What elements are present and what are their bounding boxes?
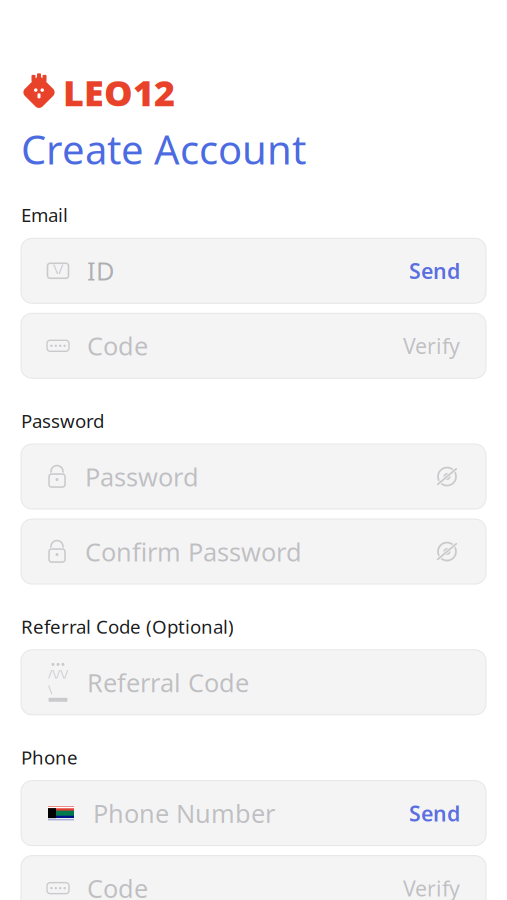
staticText: Referral Code (87, 665, 249, 699)
staticText: Code (87, 329, 148, 362)
button[interactable]: Confirm Password (21, 519, 486, 584)
button[interactable]: Phone Number (21, 781, 486, 846)
staticText: Verify (403, 874, 460, 900)
staticText: Password (85, 460, 199, 493)
staticText: Phone (21, 745, 78, 770)
staticText: Confirm Password (85, 535, 302, 568)
staticText: Send (409, 257, 460, 285)
staticText: Verify (403, 332, 460, 360)
staticText: Password (21, 408, 104, 433)
button[interactable]: Code (21, 313, 486, 378)
button[interactable]: Code (21, 856, 486, 900)
staticText: Phone Number (93, 796, 275, 830)
staticText: /\/\/\ (48, 666, 68, 698)
button[interactable]: \/ (21, 238, 486, 303)
button[interactable]: Password (21, 444, 486, 509)
staticText: LEO12 (63, 68, 175, 116)
staticText: ID (87, 254, 114, 287)
staticText: Create Account (21, 122, 306, 175)
button[interactable]: /\/\/\ (21, 650, 486, 715)
staticText: \/ (53, 259, 63, 278)
staticText: Referral Code (Optional) (21, 614, 234, 639)
staticText: Send (409, 799, 460, 827)
staticText: Code (87, 871, 148, 900)
staticText: Email (21, 202, 68, 227)
